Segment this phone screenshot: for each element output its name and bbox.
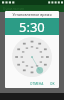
staticText: ОК bbox=[50, 82, 55, 86]
staticText: ОТМЕНА bbox=[30, 82, 44, 86]
button[interactable]: Clock dial, minutes bbox=[12, 37, 52, 77]
staticText: Установленное время bbox=[12, 12, 52, 17]
button[interactable]: 5:30 bbox=[5, 18, 59, 35]
button[interactable]: ОК bbox=[48, 81, 57, 87]
button[interactable]: ОТМЕНА bbox=[28, 81, 46, 87]
staticText: Будильник bbox=[3, 6, 25, 11]
staticText: 5:30 bbox=[19, 18, 45, 35]
